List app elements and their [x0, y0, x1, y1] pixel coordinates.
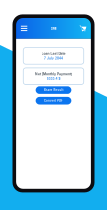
button[interactable]: Convert PDF [36, 97, 71, 104]
button[interactable]: Share Result [36, 86, 71, 94]
staticText: Convert PDF [44, 99, 63, 102]
staticText: Net [Monthly Payment] [35, 72, 72, 76]
staticText: Share Result [43, 88, 63, 92]
staticText: 7 July 2044 [44, 56, 63, 60]
button[interactable]: Menu [19, 18, 30, 39]
button[interactable]: Cart [77, 18, 88, 39]
staticText: EMI [50, 26, 56, 30]
staticText: 6333.4 $ [46, 77, 60, 80]
staticText: Loan Last Date [41, 52, 65, 56]
